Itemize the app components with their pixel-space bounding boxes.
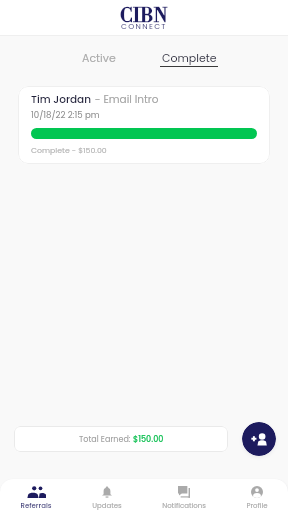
button[interactable]: Active [79,50,119,68]
button[interactable]: Referrals [20,479,52,512]
staticText: Active [82,50,116,65]
button[interactable]: Updates [92,479,122,512]
staticText: Complete [162,50,217,65]
button[interactable]: Total Earned: [14,426,228,452]
staticText: $150.00 [133,434,164,445]
button[interactable]: Complete [158,50,220,68]
staticText: Notifications [162,501,206,511]
staticText: CIBN [120,5,168,28]
button[interactable]: Profile [246,479,268,512]
staticText: Total Earned: [79,434,133,445]
staticText: CONNECT [121,21,167,32]
button[interactable]: Tim Jordan [18,86,270,164]
button[interactable]: Add referral [242,422,276,456]
staticText: Profile [246,501,268,511]
staticText: Tim Jordan [31,92,92,107]
staticText: Updates [92,501,122,511]
button[interactable]: Notifications [162,479,206,512]
staticText: Referrals [20,501,52,511]
staticText: Complete - $150.00 [31,145,107,156]
staticText: 10/18/22 2:15 pm [31,109,100,121]
staticText: - Email Intro [92,92,159,107]
